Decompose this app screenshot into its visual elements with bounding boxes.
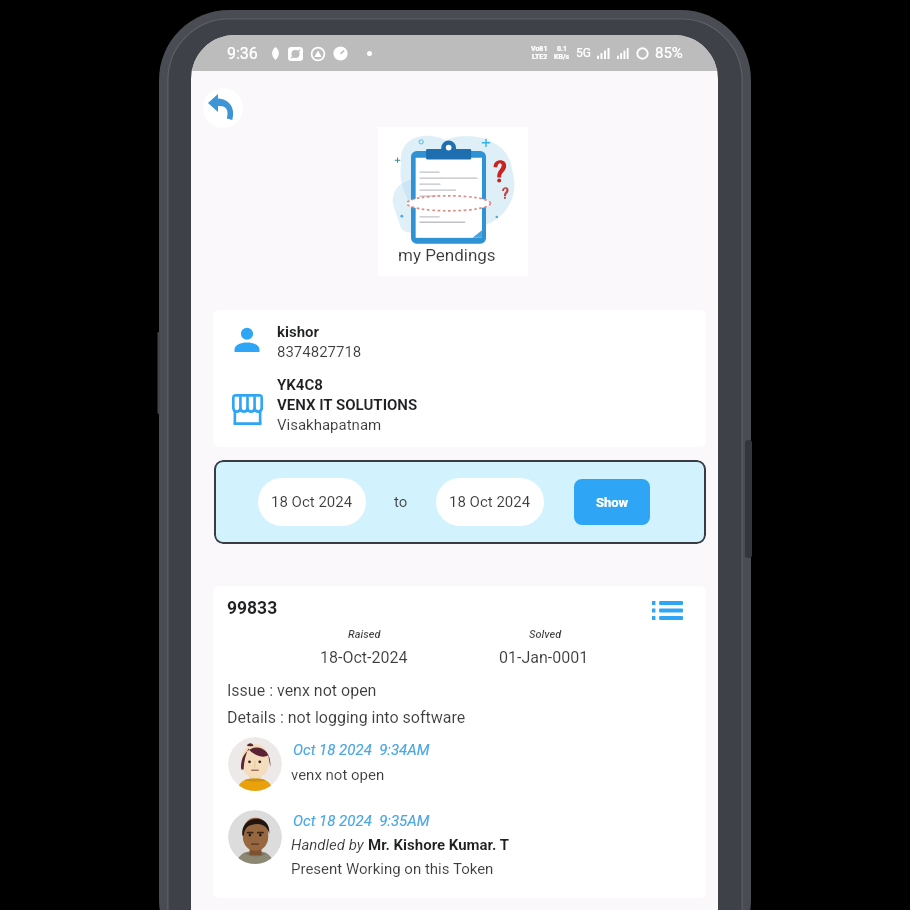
staticText: 99833 [227, 598, 278, 619]
staticText: Present Working on this Token [291, 860, 494, 878]
staticText: my Pendings [398, 245, 496, 265]
staticText: Mr. Kishore Kumar. T [368, 836, 509, 854]
staticText: Oct 18 2024 9:34AM [293, 741, 430, 759]
button[interactable]: 99833 [213, 586, 706, 898]
staticText: Details : not logging into software [227, 708, 466, 727]
staticText: Issue : venx not open [227, 681, 377, 700]
staticText: 9:36 [227, 44, 258, 63]
staticText: Visakhapatnam [277, 416, 382, 434]
staticText: 0.1 [557, 45, 568, 53]
staticText: kishor [277, 323, 320, 341]
staticText: 18 Oct 2024 [449, 493, 531, 511]
staticText: 8374827718 [277, 343, 362, 361]
staticText: 01-Jan-0001 [499, 648, 589, 667]
staticText: Show [596, 495, 629, 510]
button[interactable]: 18 Oct 2024 [436, 478, 544, 526]
button[interactable]: Details list [649, 596, 685, 624]
staticText: 18 Oct 2024 [271, 493, 353, 511]
staticText: 85% [655, 44, 683, 62]
staticText: Solved [529, 628, 562, 641]
staticText: 18-Oct-2024 [320, 648, 408, 667]
staticText: venx not open [291, 766, 385, 784]
staticText: Vo81 [531, 45, 548, 53]
staticText: Handled by [291, 836, 368, 854]
staticText: YK4C8 [277, 376, 323, 394]
staticText: LTE2 [532, 53, 548, 61]
staticText: Raised [348, 628, 381, 641]
button[interactable]: 18 Oct 2024 [258, 478, 366, 526]
button[interactable]: Show [574, 479, 650, 525]
button[interactable]: kishor [213, 310, 706, 447]
button[interactable]: Back [203, 88, 243, 128]
staticText: Oct 18 2024 9:35AM [293, 812, 430, 830]
staticText: KB/s [554, 53, 570, 61]
staticText: to [394, 493, 408, 511]
staticText: VENX IT SOLUTIONS [277, 396, 418, 414]
staticText: 5G [576, 46, 591, 60]
